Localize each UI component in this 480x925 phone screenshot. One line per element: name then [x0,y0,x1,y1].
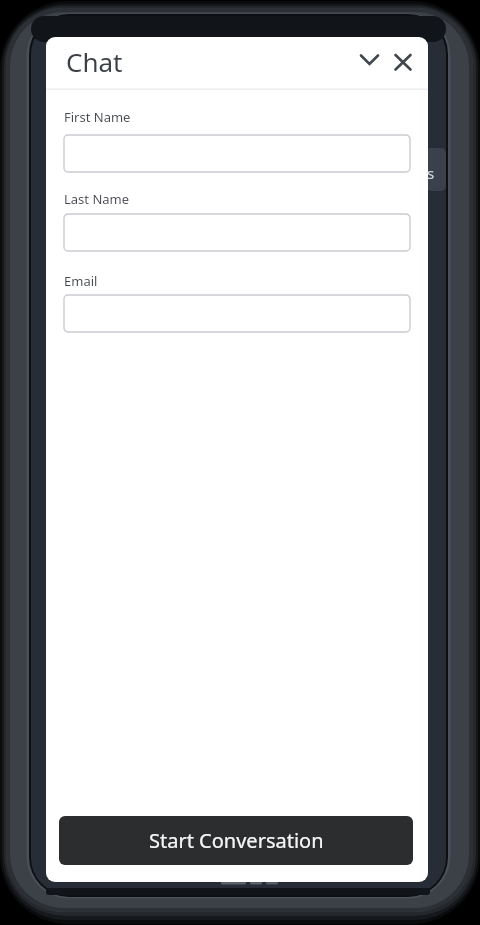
staticText: s [427,163,435,183]
staticText: Last Name [64,190,130,208]
staticText: Start Conversation [149,827,324,854]
staticText: Chat [66,44,123,79]
staticText: First Name [64,108,131,126]
staticText: Email [64,272,98,290]
